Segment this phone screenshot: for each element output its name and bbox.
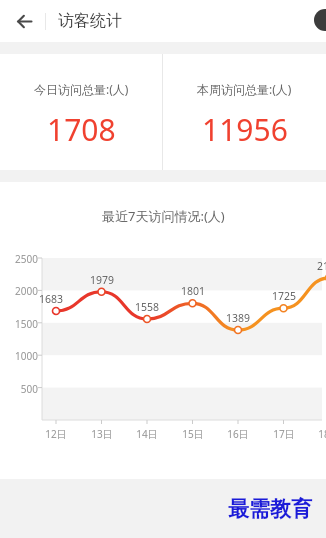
staticText: 15日 — [176, 427, 210, 441]
staticText: 1389 — [221, 311, 255, 325]
staticText: 1000 — [2, 349, 38, 363]
staticText: 1683 — [34, 292, 68, 306]
staticText: 14日 — [130, 427, 164, 441]
staticText: 1558 — [130, 300, 164, 314]
staticText: 18日 — [312, 427, 326, 441]
staticText: 500 — [2, 382, 38, 396]
staticText: 11956 — [202, 109, 288, 150]
staticText: 本周访问总量:(人) — [197, 81, 292, 97]
staticText: 13日 — [85, 427, 119, 441]
staticText: 1979 — [85, 273, 119, 287]
staticText: 1801 — [176, 284, 210, 298]
button[interactable]: 本周访问总量:(人) — [163, 54, 326, 170]
staticText: 今日访问总量:(人) — [34, 81, 129, 97]
staticText: 16日 — [221, 427, 255, 441]
staticText: 2000 — [2, 284, 38, 298]
staticText: 最需教育 — [228, 496, 312, 522]
staticText: 2194 — [312, 259, 326, 273]
button[interactable]: 今日访问总量:(人) — [0, 54, 162, 170]
staticText: 1708 — [47, 109, 116, 150]
staticText: 12日 — [39, 427, 73, 441]
staticText: 访客统计 — [58, 11, 122, 31]
staticText: 1500 — [2, 317, 38, 331]
staticText: 最近7天访问情况:(人) — [102, 207, 225, 225]
staticText: 1725 — [267, 289, 301, 303]
button[interactable]: Back — [6, 4, 40, 38]
button[interactable]: Help — [314, 9, 326, 31]
staticText: 17日 — [267, 427, 301, 441]
staticText: 2500 — [2, 252, 38, 266]
